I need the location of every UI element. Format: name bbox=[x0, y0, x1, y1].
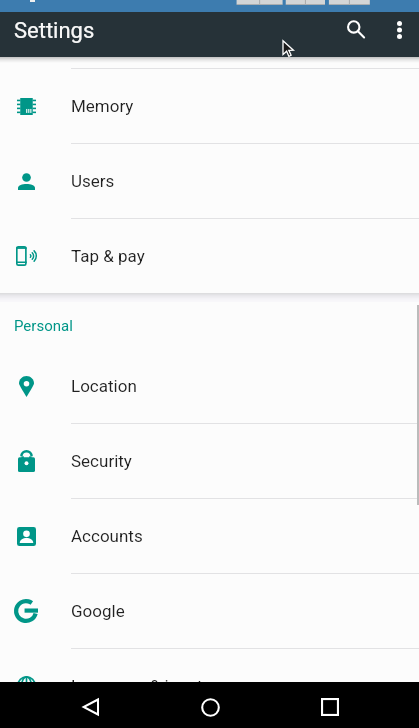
button[interactable]: Location bbox=[0, 349, 419, 423]
button[interactable]: Back bbox=[67, 684, 113, 728]
button[interactable]: Security bbox=[0, 424, 419, 498]
button[interactable]: Search bbox=[334, 7, 378, 51]
staticText: Location bbox=[71, 376, 137, 396]
button[interactable]: Language & input bbox=[0, 649, 419, 723]
button[interactable]: Accounts bbox=[0, 499, 419, 573]
staticText: Users bbox=[71, 171, 115, 191]
staticText: Settings bbox=[14, 18, 95, 44]
staticText: Accounts bbox=[71, 526, 143, 546]
button[interactable]: More options bbox=[379, 10, 419, 50]
staticText: Tap & pay bbox=[71, 246, 145, 266]
button[interactable]: Tap & pay bbox=[0, 219, 419, 293]
staticText: Security bbox=[71, 451, 132, 471]
staticText: Personal bbox=[14, 317, 73, 335]
button[interactable]: Google bbox=[0, 574, 419, 648]
staticText: Google bbox=[71, 601, 125, 621]
button[interactable]: Home bbox=[187, 684, 233, 728]
button[interactable]: Users bbox=[0, 144, 419, 218]
button[interactable]: Recents bbox=[307, 684, 353, 728]
button[interactable]: Memory bbox=[0, 69, 419, 143]
staticText: Language & input bbox=[71, 676, 203, 696]
staticText: Memory bbox=[71, 96, 134, 116]
